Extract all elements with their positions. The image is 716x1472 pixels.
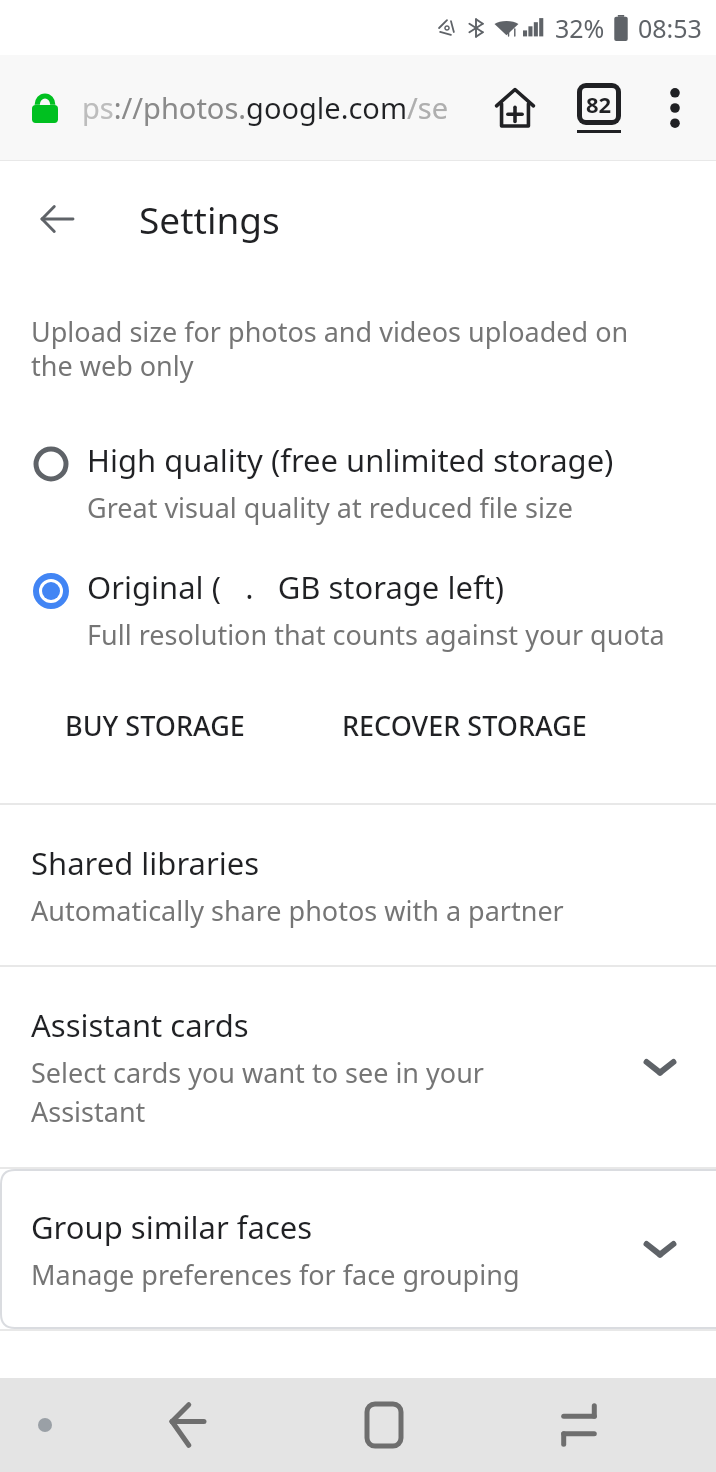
staticText: Assistant cards <box>31 1004 249 1046</box>
staticText: Upload size for photos and videos upload… <box>31 313 676 384</box>
staticText: Original ( . GB storage left) <box>87 566 505 608</box>
button[interactable]: Add to home screen <box>482 75 548 141</box>
button[interactable]: High quality (free unlimited storage) <box>0 438 716 526</box>
staticText: Manage preferences for face grouping <box>31 1256 520 1293</box>
button[interactable]: Assistant cards <box>0 967 716 1167</box>
staticText: Group similar faces <box>31 1206 313 1248</box>
staticText: Shared libraries <box>31 842 260 884</box>
staticText: 08:53 <box>638 11 702 45</box>
button[interactable]: BUY STORAGE <box>31 692 278 758</box>
button[interactable]: Site information <box>22 85 68 131</box>
button[interactable]: More options <box>642 75 708 141</box>
staticText: Great visual quality at reduced file siz… <box>87 489 573 526</box>
button[interactable]: Back <box>90 1378 286 1472</box>
staticText: 32% <box>555 11 605 45</box>
button[interactable]: Home <box>286 1378 481 1472</box>
button[interactable]: Shared libraries <box>0 805 716 965</box>
staticText: RECOVER STORAGE <box>342 707 587 744</box>
button[interactable]: Switch tabs, 82 open <box>566 75 632 141</box>
staticText: BUY STORAGE <box>65 707 245 744</box>
staticText: Automatically share photos with a partne… <box>31 892 564 929</box>
button[interactable]: Recent apps <box>481 1378 676 1472</box>
staticText: ps://photos.google.com/se <box>82 88 449 127</box>
button[interactable]: RECOVER STORAGE <box>304 692 624 758</box>
staticText: Full resolution that counts against your… <box>87 616 665 653</box>
staticText: Settings <box>139 194 280 244</box>
button[interactable]: Original ( . GB storage left) <box>0 565 716 653</box>
staticText: Select cards you want to see in your Ass… <box>31 1054 485 1130</box>
staticText: High quality (free unlimited storage) <box>87 439 614 481</box>
staticText: 82 <box>586 89 612 119</box>
button[interactable]: Back <box>24 186 90 252</box>
